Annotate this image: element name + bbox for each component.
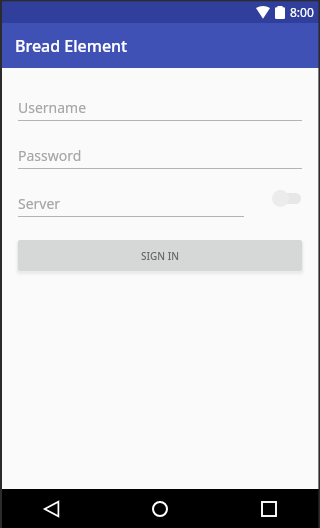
- staticText: 8:00: [290, 4, 314, 20]
- staticText: Bread Element: [15, 35, 128, 57]
- staticText: Server: [18, 194, 61, 213]
- staticText: SIGN IN: [141, 249, 179, 263]
- button[interactable]: Back: [28, 489, 76, 528]
- button[interactable]: Use server: [260, 187, 302, 209]
- staticText: Username: [18, 98, 87, 117]
- button[interactable]: Recent apps: [245, 489, 293, 528]
- button[interactable]: Home: [136, 489, 184, 528]
- staticText: Password: [18, 146, 82, 165]
- button[interactable]: SIGN IN: [18, 240, 302, 271]
